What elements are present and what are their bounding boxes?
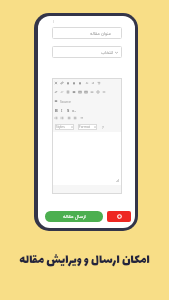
staticText: x₂ [72,108,76,112]
button[interactable]: Tool [90,90,94,94]
button[interactable]: ارسال مقاله [45,211,103,222]
button[interactable]: انتخاب [52,46,122,58]
staticText: ? [102,125,104,129]
staticText: انتخاب [101,49,114,56]
button[interactable]: Tool [73,116,77,120]
button[interactable]: Styles [56,124,73,130]
button[interactable]: Tool [60,90,64,94]
button[interactable]: Tool [72,81,76,85]
button[interactable]: Tool [97,81,101,85]
button[interactable]: B [54,108,58,112]
button[interactable]: Tool [54,90,58,94]
staticText: B [55,108,58,112]
staticText: امکان ارسال و ویرایش مقاله [0,250,169,271]
button[interactable]: Tool [67,116,71,120]
button[interactable]: Tool [85,81,89,85]
button[interactable]: Tool [84,90,88,94]
button[interactable]: x₂ [72,108,76,112]
button[interactable]: Tool [91,81,95,85]
button[interactable]: Tool [60,116,64,120]
button[interactable]: S [66,108,70,112]
staticText: S [67,108,70,112]
button[interactable]: I [60,108,64,112]
button[interactable]: Tool [72,90,76,94]
button[interactable]: Tool [102,90,106,94]
staticText: ارسال مقاله [63,213,86,221]
button[interactable]: Tool [54,81,58,85]
button[interactable]: Delete [107,211,131,222]
button[interactable]: Format [79,124,96,130]
button[interactable]: Tool [60,81,64,85]
button[interactable]: Tool [78,90,82,94]
staticText: Source [60,99,71,104]
staticText: Styles [56,125,65,129]
button[interactable]: عنوان مقاله [52,27,122,39]
button[interactable]: Tool [66,81,70,85]
button[interactable]: Tool [54,116,58,120]
button[interactable]: Tool [78,81,82,85]
button[interactable]: ? [101,125,105,129]
staticText: عنوان مقاله [90,30,112,37]
button[interactable]: Tool [80,116,84,120]
button[interactable]: Tool [54,99,58,103]
button[interactable]: Tool [96,90,100,94]
staticText: Format [79,125,90,129]
button[interactable]: Tool [66,90,70,94]
staticText: I [61,108,63,112]
